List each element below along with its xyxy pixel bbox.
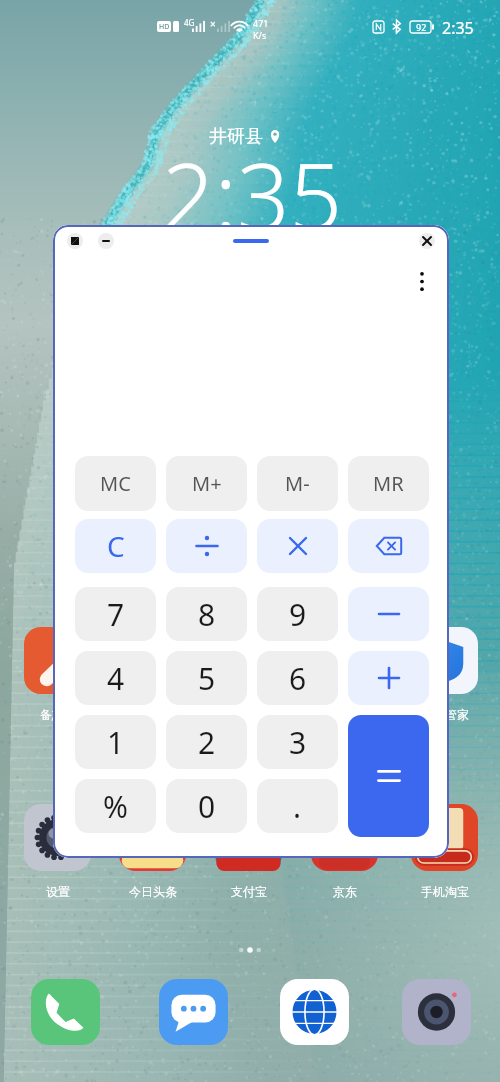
button[interactable]: Phone	[31, 979, 100, 1045]
button[interactable]: Camera	[402, 979, 471, 1045]
staticText: 9	[289, 594, 307, 635]
button[interactable]: Minimize	[98, 233, 114, 249]
button[interactable]: Maximize	[67, 233, 83, 249]
button[interactable]: Close	[419, 233, 435, 249]
staticText: 电话管家	[421, 707, 469, 722]
button[interactable]: 设置	[24, 804, 91, 899]
staticText: 支付宝	[231, 884, 267, 899]
button[interactable]: Backspace	[348, 519, 429, 573]
staticText: 设置	[46, 884, 70, 899]
button[interactable]: 9	[257, 587, 338, 641]
button[interactable]: 5	[166, 651, 247, 705]
staticText: HD	[159, 22, 170, 32]
button[interactable]: 4	[75, 651, 156, 705]
button[interactable]: Divide	[166, 519, 247, 573]
staticText: 8	[198, 594, 216, 635]
staticText: 4	[107, 658, 125, 699]
button[interactable]: MR	[348, 456, 429, 511]
button[interactable]: Multiply	[257, 519, 338, 573]
staticText: K/s	[253, 29, 267, 41]
staticText: 2	[198, 722, 216, 763]
button[interactable]: M-	[257, 456, 338, 511]
button[interactable]: 0	[166, 779, 247, 833]
button[interactable]: C	[75, 519, 156, 573]
staticText: MC	[100, 470, 131, 497]
staticText: 京东	[333, 884, 357, 899]
staticText: M+	[192, 470, 222, 497]
staticText: .	[293, 786, 302, 827]
staticText: %	[103, 786, 128, 827]
button[interactable]: Drag window	[233, 239, 269, 243]
staticText: MR	[373, 470, 404, 497]
button[interactable]: 支付宝	[215, 804, 282, 899]
button[interactable]: .	[257, 779, 338, 833]
staticText: 471	[253, 17, 269, 29]
button[interactable]: 京东	[311, 804, 378, 899]
button[interactable]: Equals	[348, 715, 429, 837]
staticText: 0	[198, 786, 216, 827]
button[interactable]: 7	[75, 587, 156, 641]
staticText: C	[107, 527, 125, 565]
button[interactable]: 6	[257, 651, 338, 705]
button[interactable]: 3	[257, 715, 338, 769]
button[interactable]: Browser	[280, 979, 349, 1045]
button[interactable]: Minus	[348, 587, 429, 641]
staticText: 手机淘宝	[421, 884, 469, 899]
staticText: 92	[416, 21, 427, 33]
staticText: 今日头条	[129, 884, 177, 899]
button[interactable]: Messages	[159, 979, 228, 1045]
staticText: 井研县	[209, 125, 263, 148]
staticText: 2:35	[442, 17, 474, 39]
staticText: 1	[107, 722, 125, 763]
button[interactable]: Plus	[348, 651, 429, 705]
button[interactable]: 电话管家	[411, 627, 478, 722]
button[interactable]: 手机淘宝	[411, 804, 478, 899]
button[interactable]: 井研县	[209, 125, 280, 148]
staticText: 6	[289, 658, 307, 699]
button[interactable]: More options	[412, 266, 432, 297]
button[interactable]: 1	[75, 715, 156, 769]
staticText: M-	[285, 470, 310, 497]
button[interactable]: %	[75, 779, 156, 833]
button[interactable]: 2	[166, 715, 247, 769]
staticText: 4G	[184, 17, 195, 28]
staticText: 3	[289, 722, 307, 763]
button[interactable]: 备忘录	[24, 627, 91, 722]
staticText: 5	[198, 658, 216, 699]
staticText: 7	[107, 594, 125, 635]
button[interactable]: MC	[75, 456, 156, 511]
staticText: 备忘录	[40, 707, 76, 722]
button[interactable]: 2:35	[162, 132, 343, 257]
button[interactable]: M+	[166, 456, 247, 511]
staticText: ×	[210, 17, 216, 31]
button[interactable]: 今日头条	[119, 804, 186, 899]
staticText: 2:35	[162, 132, 343, 257]
button[interactable]: 8	[166, 587, 247, 641]
